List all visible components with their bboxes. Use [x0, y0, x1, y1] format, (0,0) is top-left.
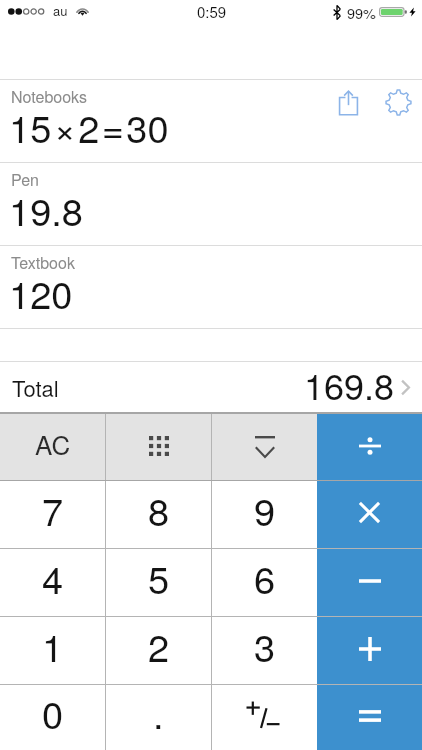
button[interactable]: 1	[0, 617, 105, 684]
staticText: Notebooks	[11, 85, 88, 108]
button[interactable]: Hide keyboard	[212, 414, 317, 480]
button[interactable]: 2	[106, 617, 211, 684]
button[interactable]: Add	[317, 617, 422, 684]
staticText: 15 × 2 = 30	[9, 99, 169, 153]
button[interactable]: 3	[212, 617, 317, 684]
staticText: 8	[148, 482, 170, 536]
staticText: AC	[35, 425, 71, 462]
button[interactable]: Pen	[0, 163, 422, 245]
button[interactable]: Multiply	[317, 481, 422, 548]
staticText: 7	[42, 482, 64, 536]
button[interactable]: 9	[212, 481, 317, 548]
staticText: 1	[42, 618, 64, 672]
staticText: 2	[148, 618, 170, 672]
staticText: 6	[254, 550, 276, 604]
button[interactable]: Divide	[317, 414, 422, 480]
button[interactable]: Settings	[378, 82, 418, 122]
button[interactable]: Keypad	[106, 414, 211, 480]
staticText: Textbook	[11, 251, 75, 274]
button[interactable]: Textbook	[0, 246, 422, 328]
button[interactable]: 5	[106, 549, 211, 616]
button[interactable]: AC	[0, 414, 105, 480]
staticText: 99%	[347, 2, 377, 23]
button[interactable]: Subtract	[317, 549, 422, 616]
button[interactable]: 4	[0, 549, 105, 616]
staticText: 120	[9, 265, 73, 319]
staticText: 4	[42, 550, 64, 604]
button[interactable]: Total	[0, 362, 422, 412]
button[interactable]: Equals	[317, 685, 422, 750]
button[interactable]: 8	[106, 481, 211, 548]
staticText: 19.8	[9, 182, 83, 236]
button[interactable]	[212, 685, 317, 750]
staticText: 5	[148, 550, 170, 604]
staticText: 169.8	[304, 359, 395, 409]
staticText: Total	[12, 372, 59, 404]
button[interactable]: 6	[212, 549, 317, 616]
staticText: 9	[254, 482, 276, 536]
button[interactable]: 0	[0, 685, 105, 750]
button[interactable]: Share	[328, 83, 368, 123]
staticText: .	[153, 685, 164, 739]
staticText: 0:59	[197, 1, 227, 22]
staticText: 3	[254, 618, 276, 672]
button[interactable]: 7	[0, 481, 105, 548]
staticText: au	[53, 1, 68, 20]
button[interactable]: Notebooks	[0, 80, 422, 162]
button[interactable]: .	[106, 685, 211, 750]
staticText: 0	[42, 685, 64, 739]
staticText: Pen	[11, 168, 39, 191]
